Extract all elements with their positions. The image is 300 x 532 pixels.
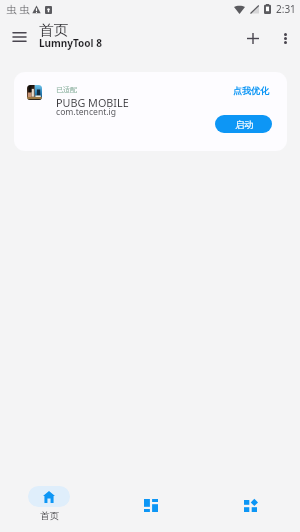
staticText: PUBG MOBILE: [56, 95, 129, 110]
staticText: 首页: [39, 21, 68, 39]
staticText: 已适配: [56, 85, 77, 94]
button[interactable]: 首页: [16, 481, 82, 526]
staticText: LumnyTool 8: [39, 36, 102, 50]
button[interactable]: More options: [272, 25, 298, 51]
staticText: 虫虫: [5, 3, 31, 16]
button[interactable]: Modules: [117, 481, 183, 526]
button[interactable]: 点我优化: [233, 85, 269, 96]
staticText: 首页: [40, 510, 59, 522]
button[interactable]: 启动: [215, 115, 272, 133]
button[interactable]: 已适配: [14, 72, 287, 151]
button[interactable]: Add: [240, 25, 266, 51]
staticText: 2:31: [276, 2, 296, 16]
staticText: 启动: [235, 119, 253, 130]
button[interactable]: Menu: [6, 24, 32, 50]
staticText: 点我优化: [233, 85, 269, 96]
button[interactable]: Plugins: [217, 481, 283, 526]
staticText: com.tencent.ig: [56, 106, 117, 118]
